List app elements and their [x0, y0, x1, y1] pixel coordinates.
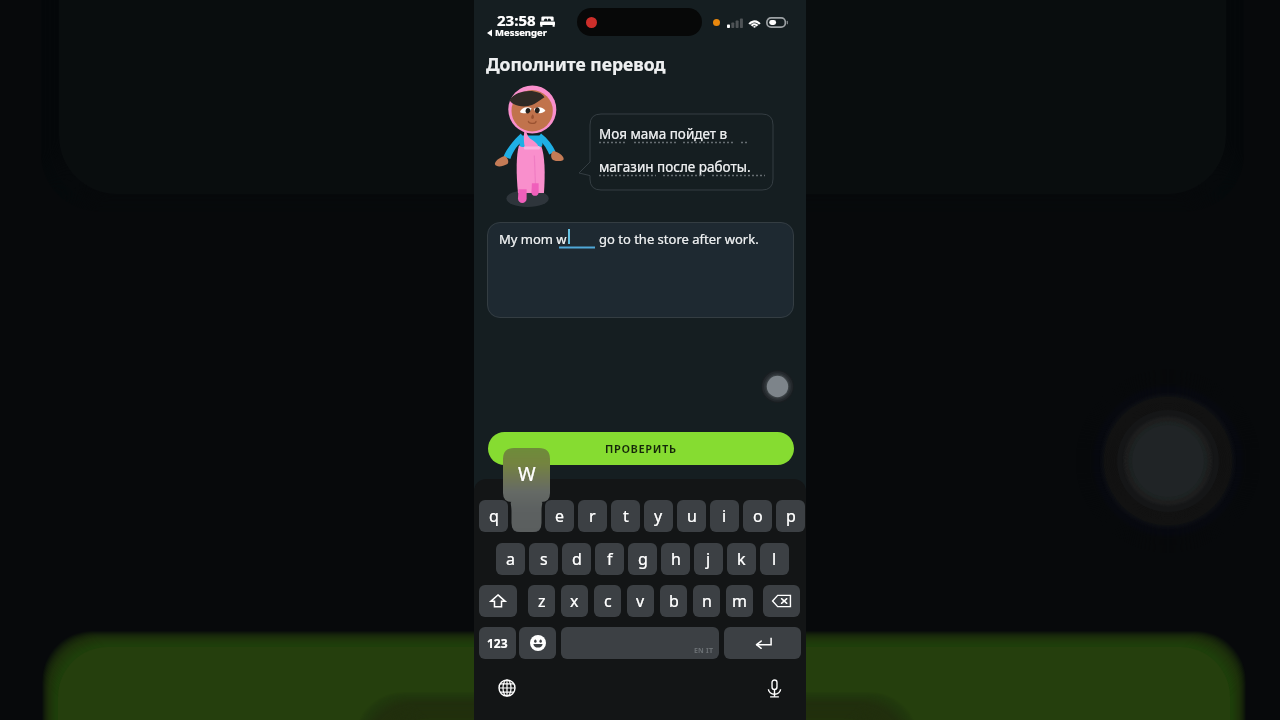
staticText: go to the store after work. [599, 230, 759, 248]
button[interactable]: j [694, 543, 723, 575]
staticText: f [607, 548, 613, 570]
staticText: i [722, 505, 727, 527]
staticText: a [506, 548, 515, 570]
button[interactable]: Emoji [519, 627, 556, 659]
staticText: Дополните перевод [486, 52, 666, 76]
button[interactable]: f [595, 543, 624, 575]
button[interactable]: v [627, 585, 654, 617]
button[interactable]: ПРОВЕРИТЬ [488, 432, 794, 465]
button[interactable]: o [743, 500, 772, 532]
staticText: s [540, 548, 548, 570]
button[interactable]: Return [724, 627, 801, 659]
button[interactable]: k [727, 543, 756, 575]
button[interactable]: 123 [479, 627, 516, 659]
button[interactable]: My mom w [487, 222, 794, 318]
button[interactable]: Assistive Touch [761, 370, 794, 403]
button[interactable]: m [726, 585, 753, 617]
staticText: g [638, 548, 648, 570]
staticText: j [706, 548, 711, 570]
button[interactable]: Dictation [761, 675, 787, 701]
staticText: u [687, 505, 697, 527]
button[interactable]: c [594, 585, 621, 617]
button[interactable]: w [512, 500, 541, 532]
staticText: m [732, 590, 747, 612]
staticText: e [555, 505, 565, 527]
staticText: b [669, 590, 679, 612]
staticText: Моя мама пойдет в [599, 125, 728, 143]
button[interactable]: t [611, 500, 640, 532]
button[interactable]: r [578, 500, 607, 532]
staticText: k [737, 548, 746, 570]
button[interactable]: n [693, 585, 720, 617]
staticText: 23:58 [497, 10, 536, 30]
staticText: c [604, 590, 612, 612]
button[interactable]: d [562, 543, 591, 575]
staticText: v [636, 590, 645, 612]
staticText: n [702, 590, 712, 612]
button[interactable]: e [545, 500, 574, 532]
staticText: q [489, 505, 499, 527]
button[interactable]: x [561, 585, 588, 617]
staticText: x [570, 590, 579, 612]
staticText: z [538, 590, 546, 612]
button[interactable]: y [644, 500, 673, 532]
button[interactable]: z [528, 585, 555, 617]
button[interactable]: b [660, 585, 687, 617]
staticText: My mom w [499, 230, 567, 248]
staticText: W [518, 461, 536, 487]
staticText: EN IT [694, 646, 714, 656]
staticText: p [786, 505, 796, 527]
button[interactable]: p [776, 500, 805, 532]
button[interactable]: Backspace [763, 585, 800, 617]
button[interactable]: i [710, 500, 739, 532]
staticText: Messenger [495, 26, 547, 39]
button[interactable]: g [628, 543, 657, 575]
button[interactable]: a [496, 543, 525, 575]
button[interactable]: u [677, 500, 706, 532]
staticText: y [654, 505, 663, 527]
staticText: магазин после работы. [599, 158, 751, 176]
button[interactable]: q [479, 500, 508, 532]
staticText: t [623, 505, 629, 527]
staticText: 123 [487, 635, 508, 651]
staticText: h [671, 548, 681, 570]
button[interactable]: EN IT [561, 627, 719, 659]
button[interactable]: Change keyboard [494, 675, 520, 701]
staticText: r [589, 505, 596, 527]
button[interactable]: s [529, 543, 558, 575]
staticText: o [753, 505, 763, 527]
staticText: l [772, 548, 777, 570]
button[interactable]: h [661, 543, 690, 575]
button[interactable]: l [760, 543, 789, 575]
staticText: ПРОВЕРИТЬ [605, 441, 677, 456]
staticText: d [572, 548, 582, 570]
button[interactable]: Shift [479, 585, 517, 617]
